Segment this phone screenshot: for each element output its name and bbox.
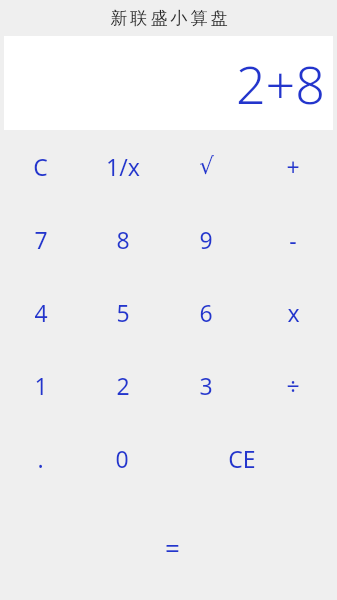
button[interactable]: ÷ [253,349,337,422]
staticText: ÷ [286,370,300,401]
staticText: = [165,530,180,565]
staticText: 1 [34,370,48,401]
button[interactable]: = [130,495,214,600]
staticText: 6 [199,297,213,328]
staticText: C [33,151,48,182]
staticText: 1/x [106,151,140,182]
staticText: 2+8 [235,48,325,119]
button[interactable]: . [0,422,84,495]
staticText: 7 [34,224,48,255]
staticText: 9 [199,224,213,255]
button[interactable]: + [253,130,337,203]
staticText: 5 [116,297,130,328]
staticText: 2 [116,370,130,401]
button[interactable]: 0 [84,422,168,495]
button[interactable]: 7 [0,203,85,276]
button[interactable]: CE [168,422,337,495]
staticText: 3 [199,370,213,401]
button[interactable]: √ [169,130,253,203]
staticText: - [289,224,297,255]
staticText: 0 [115,443,129,474]
staticText: 4 [34,297,48,328]
button[interactable]: 1/x [85,130,169,203]
button[interactable]: x [253,276,337,349]
staticText: √ [199,153,214,180]
staticText: x [287,297,300,328]
staticText: + [286,151,300,182]
staticText: 8 [116,224,130,255]
staticText: 新联盛小算盘 [109,8,229,29]
button[interactable]: 4 [0,276,85,349]
button[interactable]: 1 [0,349,85,422]
button[interactable]: 6 [169,276,253,349]
button[interactable]: - [253,203,337,276]
staticText: CE [228,443,256,474]
button[interactable]: 3 [169,349,253,422]
staticText: . [37,443,44,474]
button[interactable]: 5 [85,276,169,349]
button[interactable]: 9 [169,203,253,276]
button[interactable]: C [0,130,85,203]
button[interactable]: 8 [85,203,169,276]
button[interactable]: 2 [85,349,169,422]
